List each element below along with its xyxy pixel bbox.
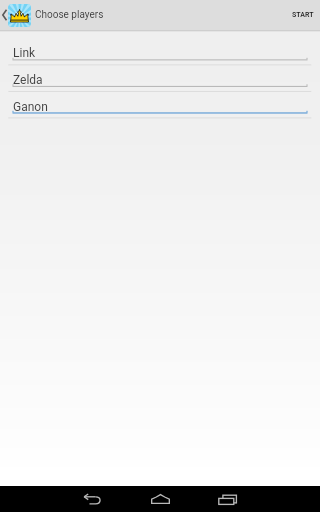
- button[interactable]: Link: [0, 31, 320, 58]
- button[interactable]: Ganon: [0, 85, 320, 112]
- button[interactable]: Recent apps: [207, 486, 247, 512]
- staticText: Zelda: [13, 73, 43, 87]
- button[interactable]: Navigate up: [0, 0, 31, 30]
- button[interactable]: START: [282, 0, 320, 30]
- staticText: START: [292, 11, 314, 19]
- button[interactable]: Home: [140, 486, 180, 512]
- staticText: Ganon: [13, 100, 48, 114]
- staticText: Link: [13, 46, 36, 60]
- staticText: Choose players: [35, 9, 104, 21]
- button[interactable]: Zelda: [0, 58, 320, 85]
- button[interactable]: Back: [72, 486, 112, 512]
